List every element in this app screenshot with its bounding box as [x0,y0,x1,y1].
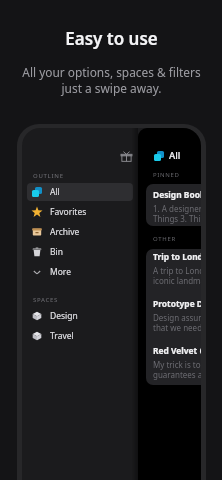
staticText: Design assumptions can change quickly, s… [153,312,201,333]
staticText: More [50,266,71,278]
button[interactable]: Travel [27,327,133,345]
staticText: Prototype Design [153,298,201,309]
button[interactable]: Prototype Design [146,293,201,333]
staticText: SPACES [33,296,59,304]
staticText: Bin [50,246,63,258]
staticText: All [169,149,181,162]
staticText: Red Velvet Cake [153,345,201,356]
button[interactable]: All [154,149,181,162]
staticText: 1. A designer's art 2. Design of Everyda… [153,203,201,224]
button[interactable]: Design Books [146,184,201,224]
staticText: Design [50,310,78,322]
staticText: Easy to use [65,27,158,50]
staticText: A trip to London is an exciting mixture … [153,265,201,286]
staticText: PINNED [153,171,180,179]
button[interactable]: Favorites [27,203,133,221]
button[interactable]: Bin [27,243,133,261]
staticText: OTHER [153,235,176,243]
staticText: All [50,186,60,198]
button[interactable]: Trip to London [146,249,201,286]
staticText: Favorites [50,206,87,218]
staticText: Travel [50,330,74,342]
staticText: Trip to London [153,251,201,262]
button[interactable]: Gift [120,150,132,162]
staticText: All your options, spaces & filters just … [22,64,201,97]
staticText: My trick is to whisk the batter which gu… [153,359,201,380]
button[interactable]: Design [27,307,133,325]
button[interactable]: All [27,183,133,201]
button[interactable]: Red Velvet Cake [146,340,201,380]
staticText: Archive [50,226,80,238]
staticText: OUTLINE [33,172,64,180]
staticText: Design Books [153,189,201,200]
button[interactable]: More [27,263,133,281]
button[interactable]: Archive [27,223,133,241]
